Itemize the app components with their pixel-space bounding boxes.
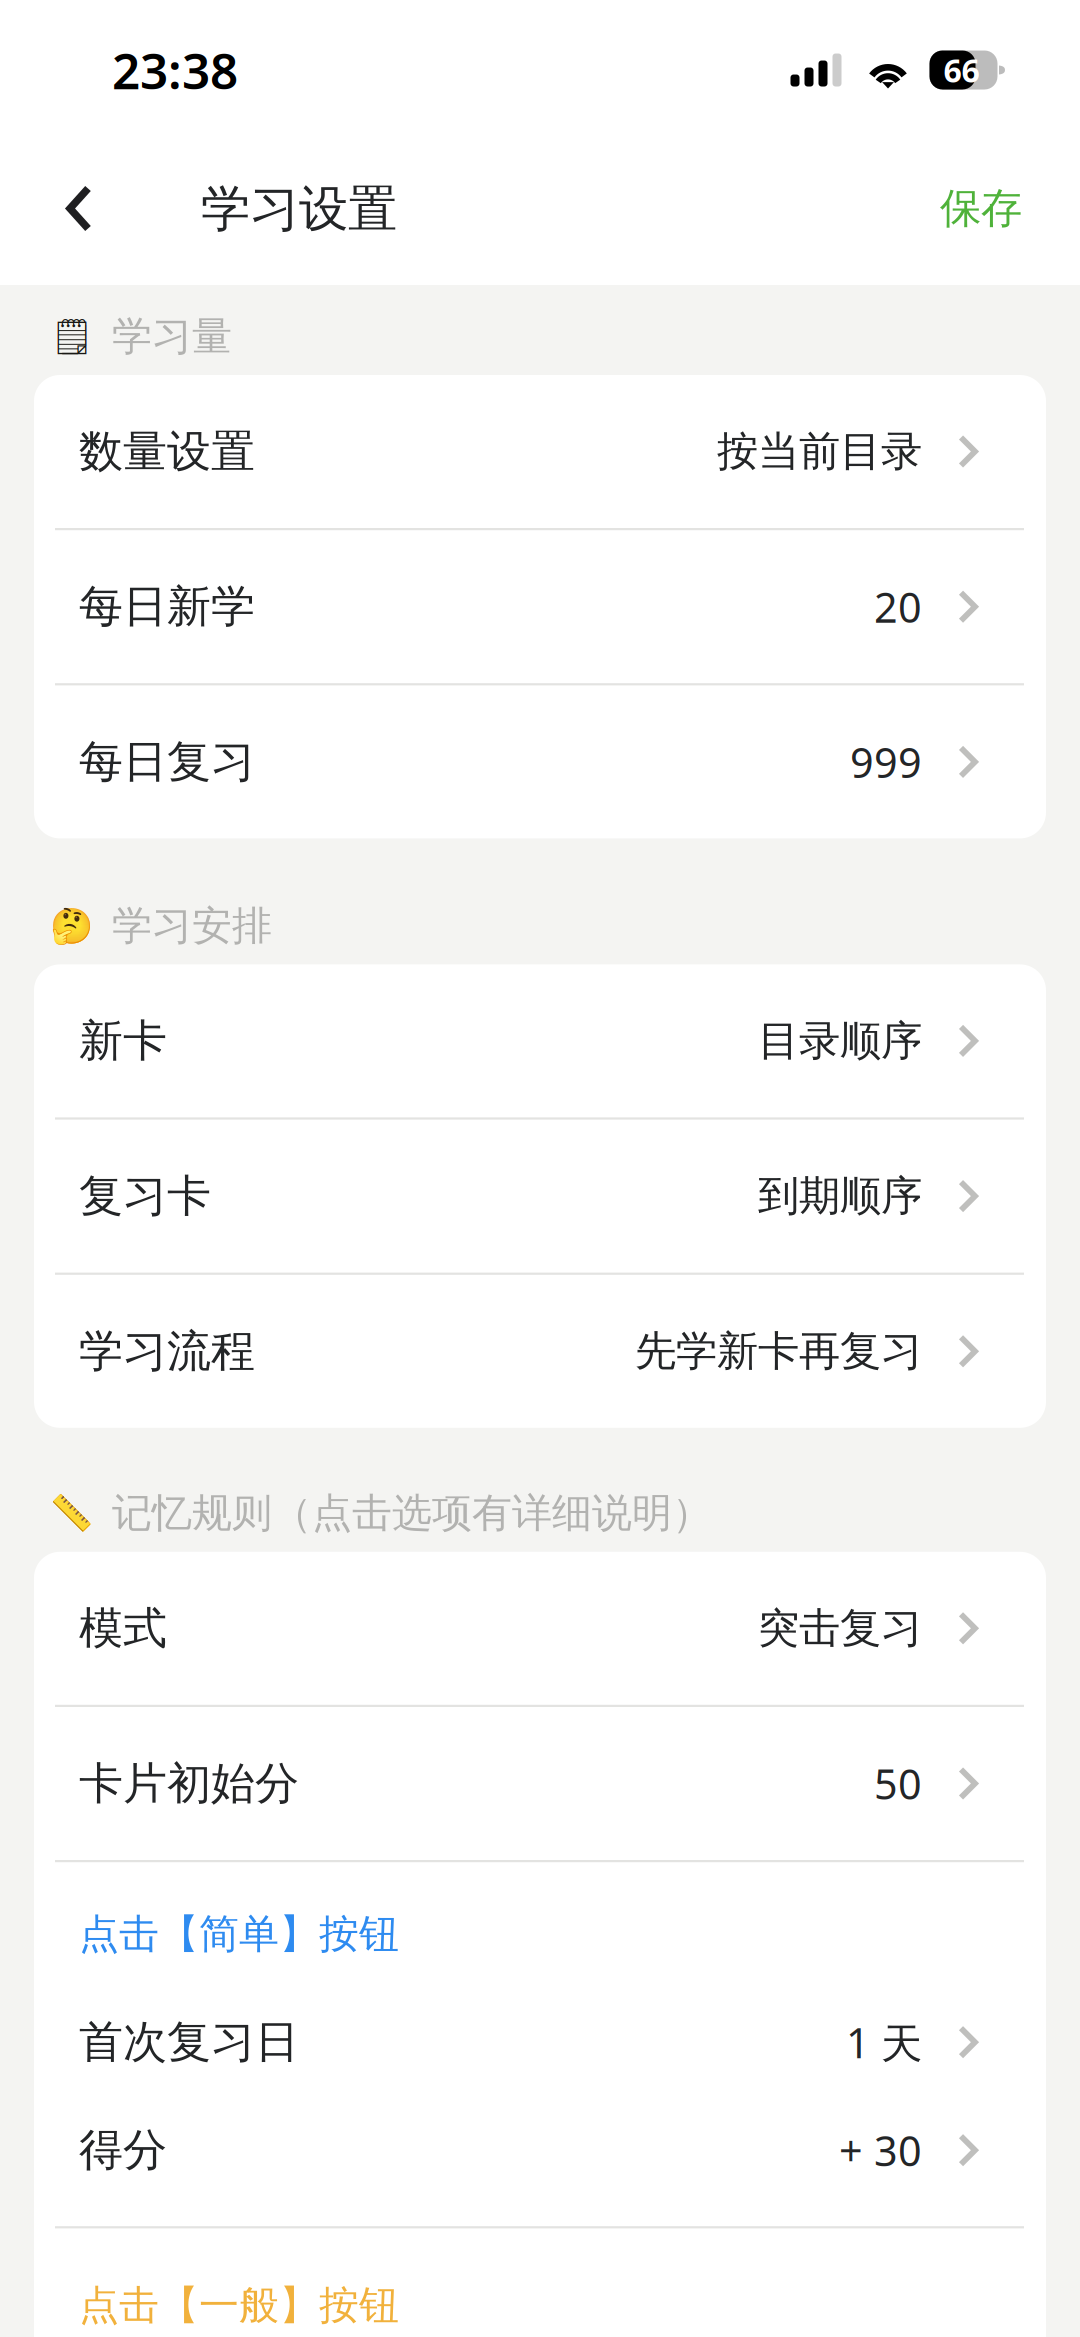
- staticText: 保存: [940, 183, 1022, 234]
- staticText: 每日新学: [79, 580, 255, 634]
- staticText: 到期顺序: [758, 1171, 922, 1221]
- button[interactable]: 保存: [916, 146, 1046, 278]
- staticText: 突击复习: [758, 1603, 922, 1654]
- button[interactable]: 每日复习: [34, 685, 1046, 838]
- staticText: 50: [874, 1756, 922, 1811]
- button[interactable]: 学习流程: [34, 1275, 1046, 1428]
- staticText: 学习设置: [201, 179, 397, 239]
- staticText: 复习卡: [79, 1169, 211, 1223]
- staticText: 1 天: [846, 2015, 922, 2070]
- button[interactable]: 每日新学: [34, 530, 1046, 683]
- staticText: 🗒: [50, 317, 94, 356]
- staticText: 每日复习: [79, 735, 255, 789]
- staticText: 🤔: [50, 906, 93, 946]
- staticText: 66: [943, 49, 979, 91]
- staticText: 📏: [50, 1493, 93, 1533]
- button[interactable]: 得分: [34, 2096, 1046, 2204]
- staticText: + 30: [839, 2123, 922, 2178]
- button[interactable]: 卡片初始分: [34, 1707, 1046, 1860]
- button[interactable]: 数量设置: [34, 375, 1046, 528]
- button[interactable]: 新卡: [34, 964, 1046, 1117]
- button[interactable]: Back: [18, 146, 140, 278]
- staticText: 点击【一般】按钮: [79, 2281, 399, 2330]
- button[interactable]: 模式: [34, 1552, 1046, 1705]
- staticText: 目录顺序: [758, 1015, 922, 1066]
- staticText: 23:38: [112, 37, 238, 103]
- staticText: 999: [850, 734, 922, 789]
- staticText: 新卡: [79, 1014, 167, 1068]
- staticText: 点击【简单】按钮: [79, 1910, 399, 1959]
- staticText: 先学新卡再复习: [635, 1326, 922, 1377]
- staticText: 20: [874, 579, 922, 634]
- staticText: 首次复习日: [79, 2015, 299, 2069]
- staticText: 卡片初始分: [79, 1756, 299, 1810]
- staticText: 得分: [79, 2123, 167, 2177]
- staticText: 学习安排: [112, 901, 272, 950]
- staticText: 数量设置: [79, 424, 255, 478]
- staticText: 按当前目录: [717, 426, 922, 477]
- button[interactable]: 首次复习日: [34, 1988, 1046, 2096]
- staticText: 模式: [79, 1601, 167, 1655]
- button[interactable]: 复习卡: [34, 1120, 1046, 1273]
- staticText: 记忆规则（点击选项有详细说明）: [112, 1489, 712, 1538]
- staticText: 学习量: [112, 312, 232, 361]
- staticText: 学习流程: [79, 1324, 255, 1378]
